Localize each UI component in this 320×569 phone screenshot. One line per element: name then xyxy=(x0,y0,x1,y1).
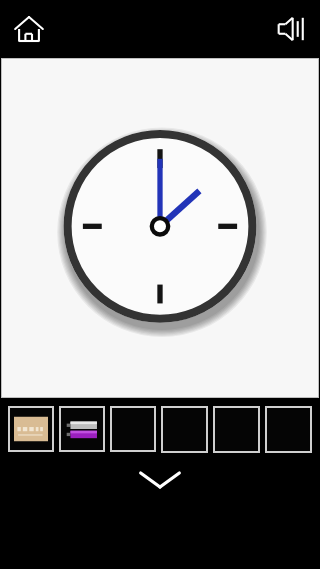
button[interactable] xyxy=(61,408,103,450)
button[interactable]: Scroll down xyxy=(0,463,320,497)
button[interactable]: Home xyxy=(8,8,50,50)
button[interactable] xyxy=(10,408,52,450)
button[interactable]: Sound xyxy=(270,8,312,50)
